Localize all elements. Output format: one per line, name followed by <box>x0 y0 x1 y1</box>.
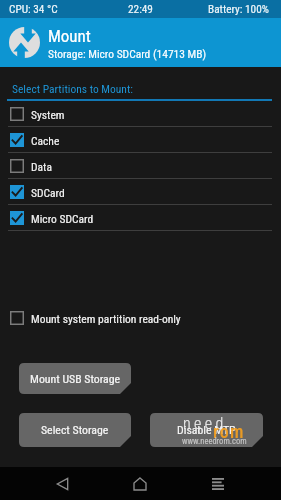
staticText: rom <box>213 421 245 442</box>
staticText: Mount USB Storage <box>30 372 121 386</box>
button[interactable]: Micro SDCard <box>0 205 281 231</box>
staticText: Micro SDCard <box>31 212 94 225</box>
staticText: Cache <box>31 134 60 147</box>
staticText: Data <box>31 160 52 173</box>
staticText: Disable MTP <box>177 423 236 437</box>
button[interactable]: Select Storage <box>19 413 131 447</box>
staticText: Mount <box>48 26 91 46</box>
button[interactable]: Menu <box>179 467 257 500</box>
staticText: Mount system partition read-only <box>31 312 181 325</box>
button[interactable]: Mount system partition read-only <box>10 305 281 331</box>
staticText: Select Partitions to Mount: <box>12 82 134 95</box>
staticText: Storage: Micro SDCard (14713 MB) <box>48 47 207 60</box>
staticText: 22:49 <box>128 3 153 16</box>
staticText: www.needrom.com <box>182 436 247 446</box>
button[interactable]: Data <box>0 153 281 179</box>
button[interactable]: System <box>0 101 281 127</box>
staticText: System <box>31 108 65 121</box>
staticText: Battery: 100% <box>208 3 269 16</box>
button[interactable]: Cache <box>0 127 281 153</box>
button[interactable]: Back <box>24 467 101 500</box>
button[interactable]: SDCard <box>0 179 281 205</box>
staticText: Select Storage <box>41 423 109 437</box>
staticText: need <box>183 414 227 433</box>
button[interactable]: Disable MTP <box>150 413 263 447</box>
staticText: CPU: 34 °C <box>9 3 58 16</box>
button[interactable]: Mount USB Storage <box>19 363 131 394</box>
button[interactable]: Home <box>101 467 179 500</box>
staticText: SDCard <box>31 186 65 199</box>
